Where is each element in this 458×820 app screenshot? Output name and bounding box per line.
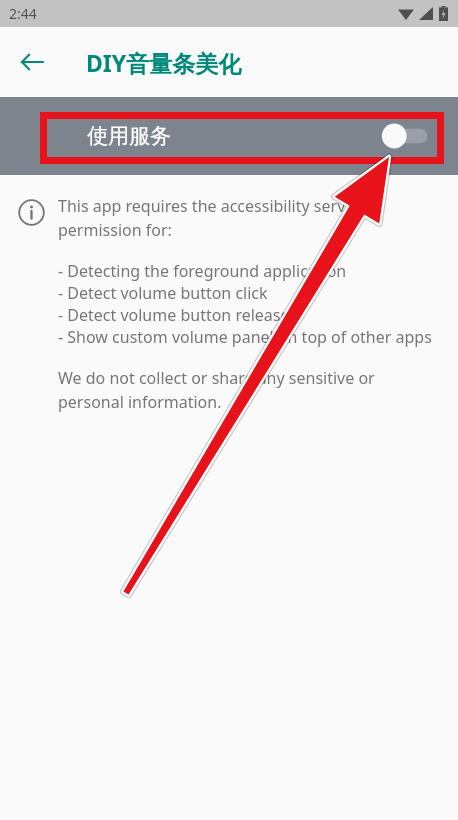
button[interactable]: 使用服务 — [0, 97, 458, 175]
staticText: - Detecting the foreground application — [58, 260, 347, 282]
staticText: We do not collect or share any sensitive… — [58, 367, 440, 413]
staticText: - Detect volume button release — [58, 304, 290, 326]
other: Enable service — [378, 116, 434, 156]
staticText: 使用服务 — [87, 123, 171, 149]
staticText: DIY音量条美化 — [86, 47, 242, 78]
staticText: 2:44 — [9, 4, 37, 23]
staticText: - Detect volume button click — [58, 282, 268, 304]
staticText: - Show custom volume panel on top of oth… — [58, 326, 432, 348]
staticText: This app requires the accessibility serv… — [58, 195, 440, 241]
button[interactable]: Back — [10, 40, 54, 84]
